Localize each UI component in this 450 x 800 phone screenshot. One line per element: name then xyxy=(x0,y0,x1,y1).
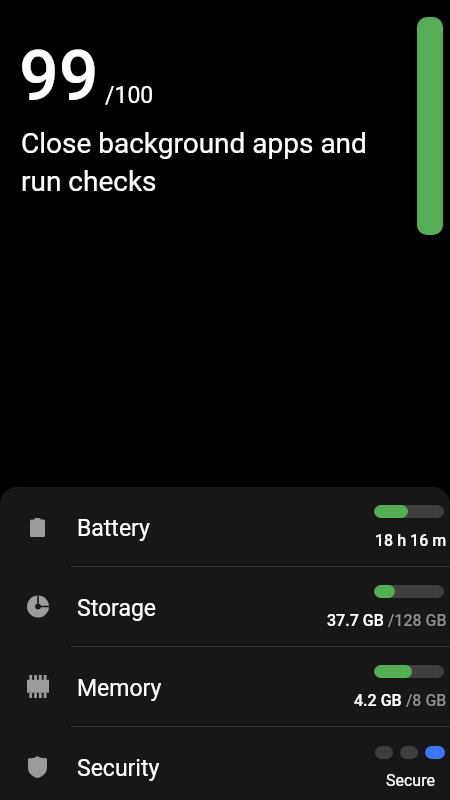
button[interactable]: Memory xyxy=(0,647,450,727)
button[interactable]: Security xyxy=(0,727,450,800)
button[interactable]: Battery xyxy=(0,487,450,567)
staticText: Secure xyxy=(386,771,435,790)
staticText: /128 GB xyxy=(384,611,447,630)
staticText: Close background apps and run checks xyxy=(21,127,367,198)
staticText: Storage xyxy=(77,595,157,622)
staticText: /8 GB xyxy=(402,691,447,710)
button[interactable]: Storage xyxy=(0,567,450,647)
staticText: 4.2 GB xyxy=(354,691,402,710)
staticText: 99 xyxy=(19,35,99,117)
staticText: Memory xyxy=(77,675,162,702)
staticText: /100 xyxy=(105,82,154,109)
staticText: Security xyxy=(77,755,160,782)
staticText: Battery xyxy=(77,515,150,542)
staticText: 37.7 GB xyxy=(327,611,384,630)
staticText: 18 h 16 m xyxy=(375,531,447,550)
other: Device score 99 of 100 xyxy=(417,17,443,235)
